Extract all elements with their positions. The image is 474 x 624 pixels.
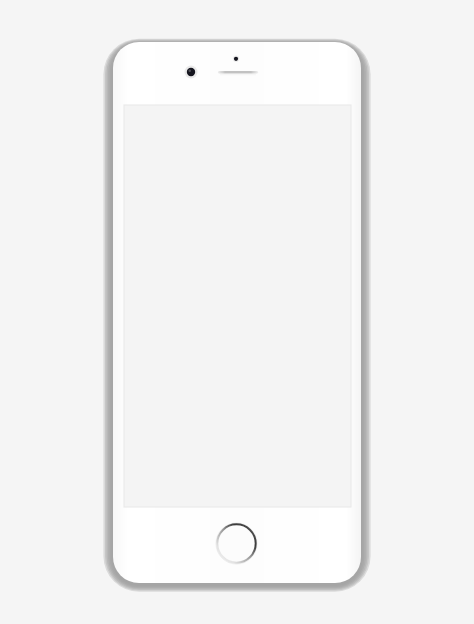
button[interactable]: White smartphone mockup with blank scree… xyxy=(0,0,474,624)
